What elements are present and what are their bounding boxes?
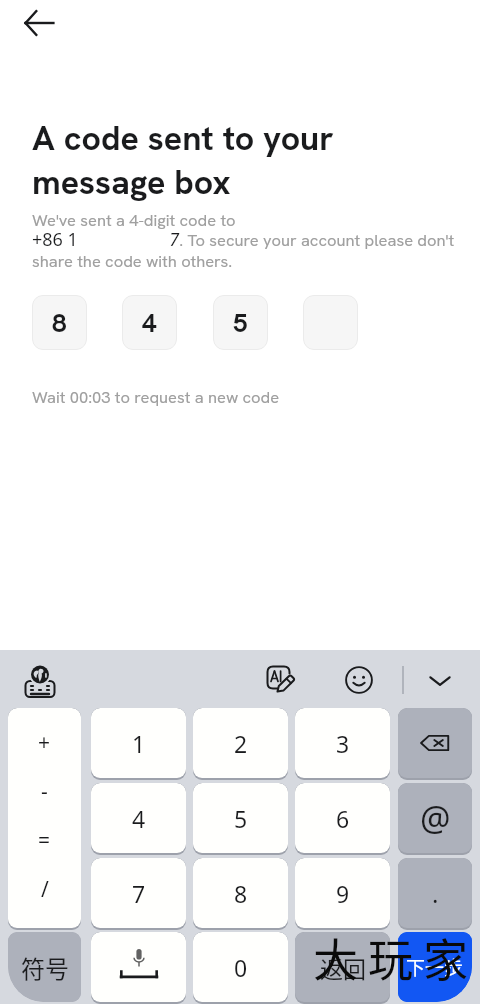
button[interactable]: 0 (193, 932, 288, 1004)
button[interactable]: 返回 (295, 932, 390, 1004)
button[interactable]: Voice input and space (91, 932, 186, 1004)
staticText: 大玩家 (313, 925, 479, 990)
button[interactable]: @ (398, 783, 472, 855)
button[interactable]: 2 (193, 708, 288, 780)
button[interactable]: Emoji (341, 662, 377, 698)
button[interactable]: 6 (295, 783, 390, 855)
button[interactable]: 下一步 (398, 932, 472, 1002)
button[interactable]: 5 (213, 295, 268, 350)
button[interactable]: 8 (32, 295, 87, 350)
button[interactable]: 8 (193, 858, 288, 930)
staticText: 符号 (21, 950, 69, 985)
staticText: 返回 (320, 951, 366, 984)
button[interactable]: Back (13, 0, 65, 49)
button[interactable]: 9 (295, 858, 390, 930)
button[interactable]: Switch input language (22, 662, 58, 698)
staticText: 6 (336, 803, 350, 834)
staticText: 8 (52, 306, 67, 340)
staticText: 2 (234, 728, 248, 759)
staticText: 下一步 (406, 953, 464, 981)
button[interactable]: Symbols plus minus equals slash (8, 708, 81, 930)
staticText: 9 (336, 878, 350, 909)
staticText: 4 (132, 803, 146, 834)
button[interactable]: . (398, 858, 472, 930)
staticText: 5 (234, 803, 248, 834)
staticText: 0 (234, 952, 248, 983)
staticText: . (432, 877, 439, 910)
staticText: - (41, 777, 48, 806)
staticText: 5 (233, 306, 248, 340)
button[interactable]: 4 (122, 295, 177, 350)
button[interactable]: Wait 00:03 to request a new code (32, 386, 280, 407)
staticText: + (38, 728, 51, 757)
button[interactable]: 4 (91, 783, 186, 855)
button[interactable]: 5 (193, 783, 288, 855)
button[interactable]: Backspace (398, 708, 472, 780)
staticText: We've sent a 4-digit code to +86 1 7. To… (32, 209, 455, 272)
staticText: 8 (234, 878, 248, 909)
staticText: 3 (336, 728, 350, 759)
button[interactable]: 符号 (8, 932, 81, 1002)
staticText: = (38, 826, 51, 855)
button[interactable]: 7 (91, 858, 186, 930)
staticText: / (41, 875, 49, 904)
staticText: 4 (142, 306, 157, 340)
button[interactable]: AI writing (263, 662, 299, 698)
staticText: 1 (132, 728, 146, 759)
button[interactable]: Hide keyboard (422, 662, 458, 698)
button[interactable]: 3 (295, 708, 390, 780)
staticText: A code sent to your message box (32, 116, 372, 204)
button[interactable]: 1 (91, 708, 186, 780)
staticText: 7 (132, 878, 146, 909)
staticText: @ (420, 795, 451, 841)
